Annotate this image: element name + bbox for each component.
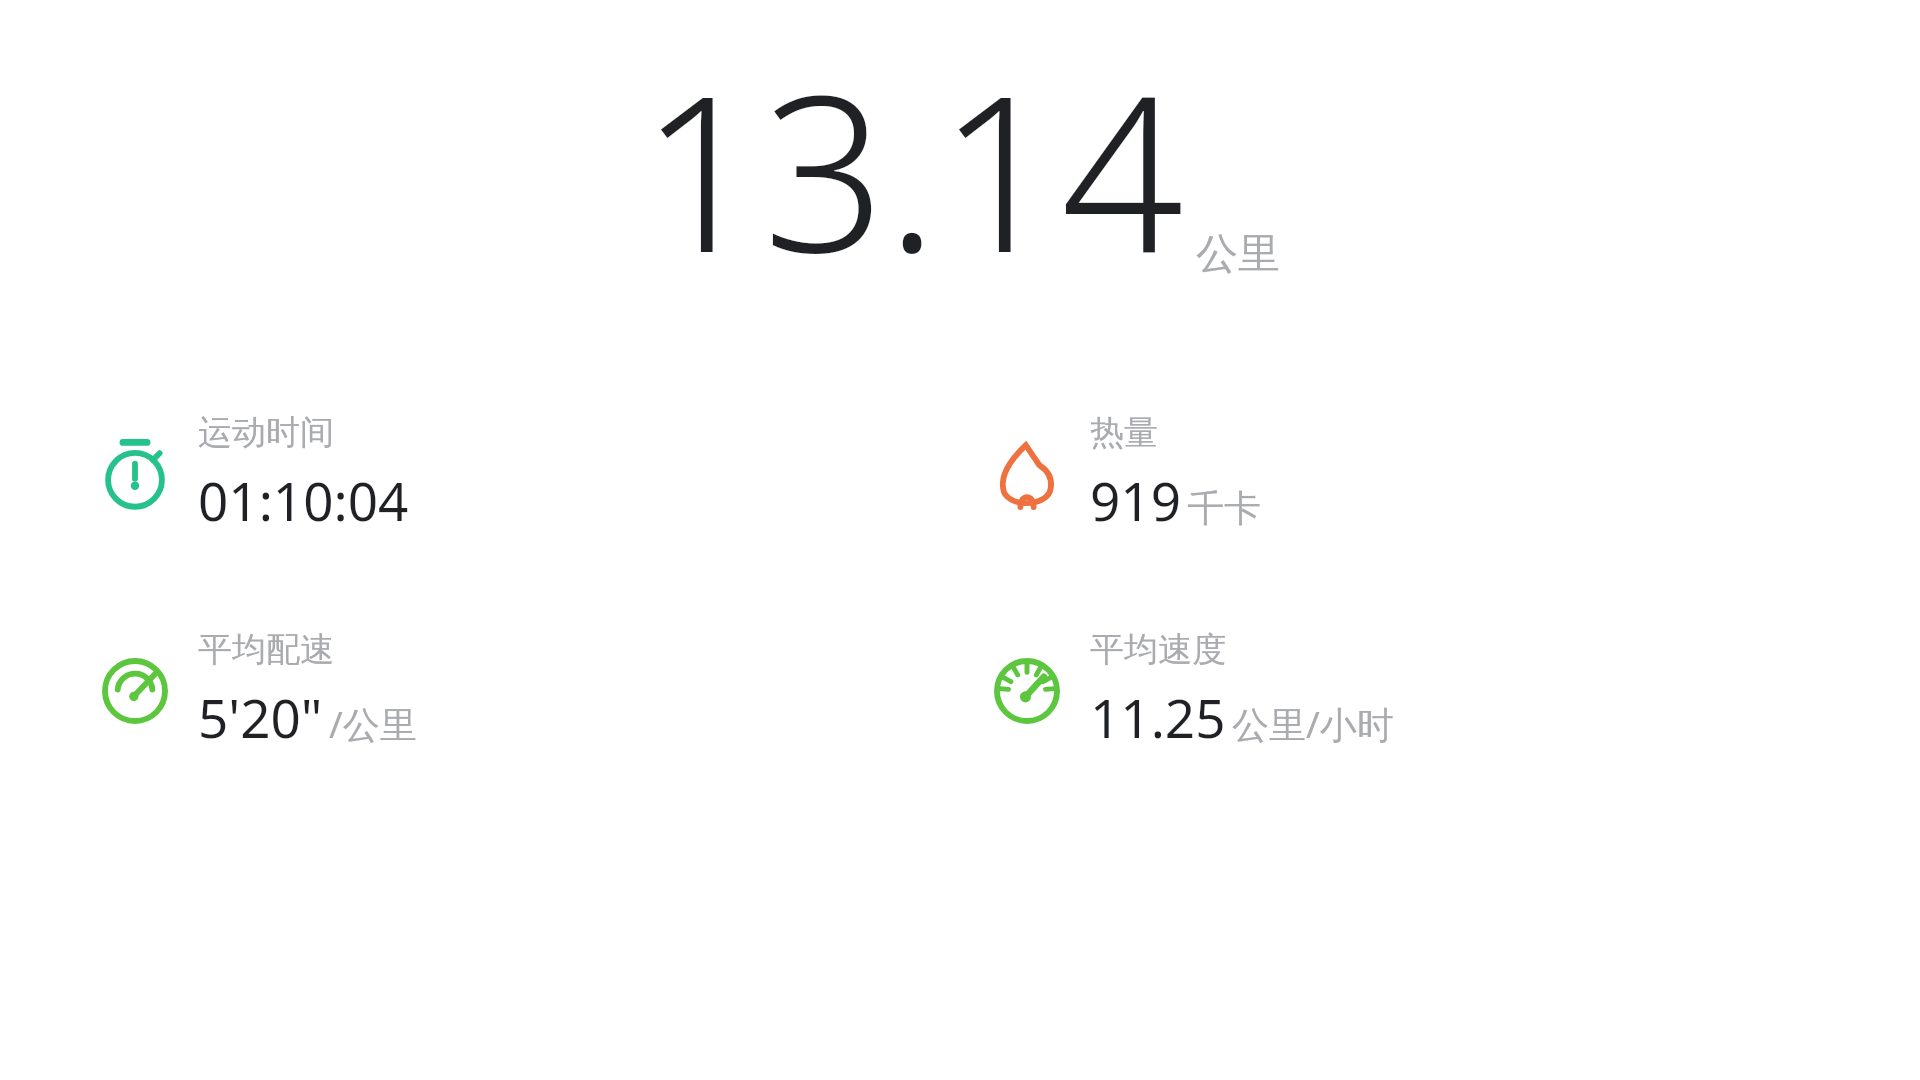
other: Calories [988, 435, 1066, 513]
staticText: 01:10:04 [198, 464, 409, 536]
staticText: 平均配速 [198, 628, 334, 671]
button[interactable]: Duration [96, 411, 409, 536]
staticText: 11.25 [1090, 681, 1226, 753]
staticText: 千卡 [1187, 485, 1261, 532]
staticText: 运动时间 [198, 411, 334, 454]
button[interactable]: Average pace [96, 628, 417, 753]
staticText: 13.14 [640, 22, 1184, 315]
staticText: 公里/小时 [1232, 698, 1394, 749]
staticText: 公里 [1196, 228, 1280, 281]
button[interactable]: Calories [988, 411, 1261, 536]
staticText: 热量 [1090, 411, 1158, 454]
staticText: 919 [1090, 464, 1181, 536]
other: Average pace [96, 652, 174, 730]
staticText: /公里 [329, 698, 417, 749]
other: Average speed [988, 652, 1066, 730]
staticText: 平均速度 [1090, 628, 1226, 671]
staticText: 5'20" [198, 681, 323, 753]
button[interactable]: Average speed [988, 628, 1394, 753]
other: Duration [96, 435, 174, 513]
